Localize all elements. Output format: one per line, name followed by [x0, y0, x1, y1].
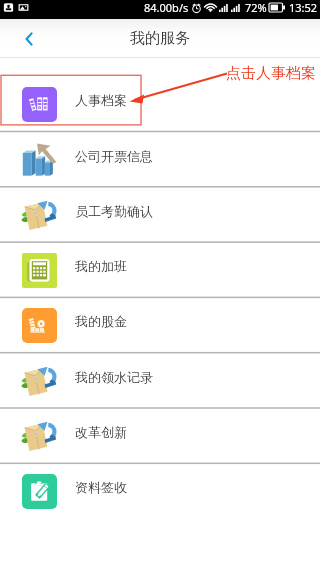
button[interactable]: Back: [12, 19, 46, 58]
staticText: 我的服务: [130, 29, 190, 48]
staticText: 72%: [245, 0, 267, 15]
button[interactable]: 我的领水记录: [0, 353, 320, 408]
button[interactable]: 我的加班: [0, 242, 320, 297]
button[interactable]: 员工考勤确认: [0, 187, 320, 242]
button[interactable]: 改革创新: [0, 408, 320, 463]
staticText: 员工考勤确认: [75, 203, 153, 219]
staticText: 改革创新: [75, 424, 127, 440]
button[interactable]: 我的股金: [0, 297, 320, 352]
staticText: 我的领水记录: [75, 369, 153, 385]
staticText: 84.00b/s: [144, 0, 189, 15]
staticText: 公司开票信息: [75, 148, 153, 164]
staticText: 资料签收: [75, 479, 127, 495]
button[interactable]: 人事档案: [0, 76, 320, 131]
staticText: 我的股金: [75, 313, 127, 329]
staticText: 点击人事档案: [226, 64, 316, 83]
staticText: 13:52: [289, 0, 318, 15]
button[interactable]: 公司开票信息: [0, 132, 320, 187]
button[interactable]: 资料签收: [0, 463, 320, 518]
staticText: 我的加班: [75, 258, 127, 274]
staticText: 人事档案: [75, 92, 127, 108]
